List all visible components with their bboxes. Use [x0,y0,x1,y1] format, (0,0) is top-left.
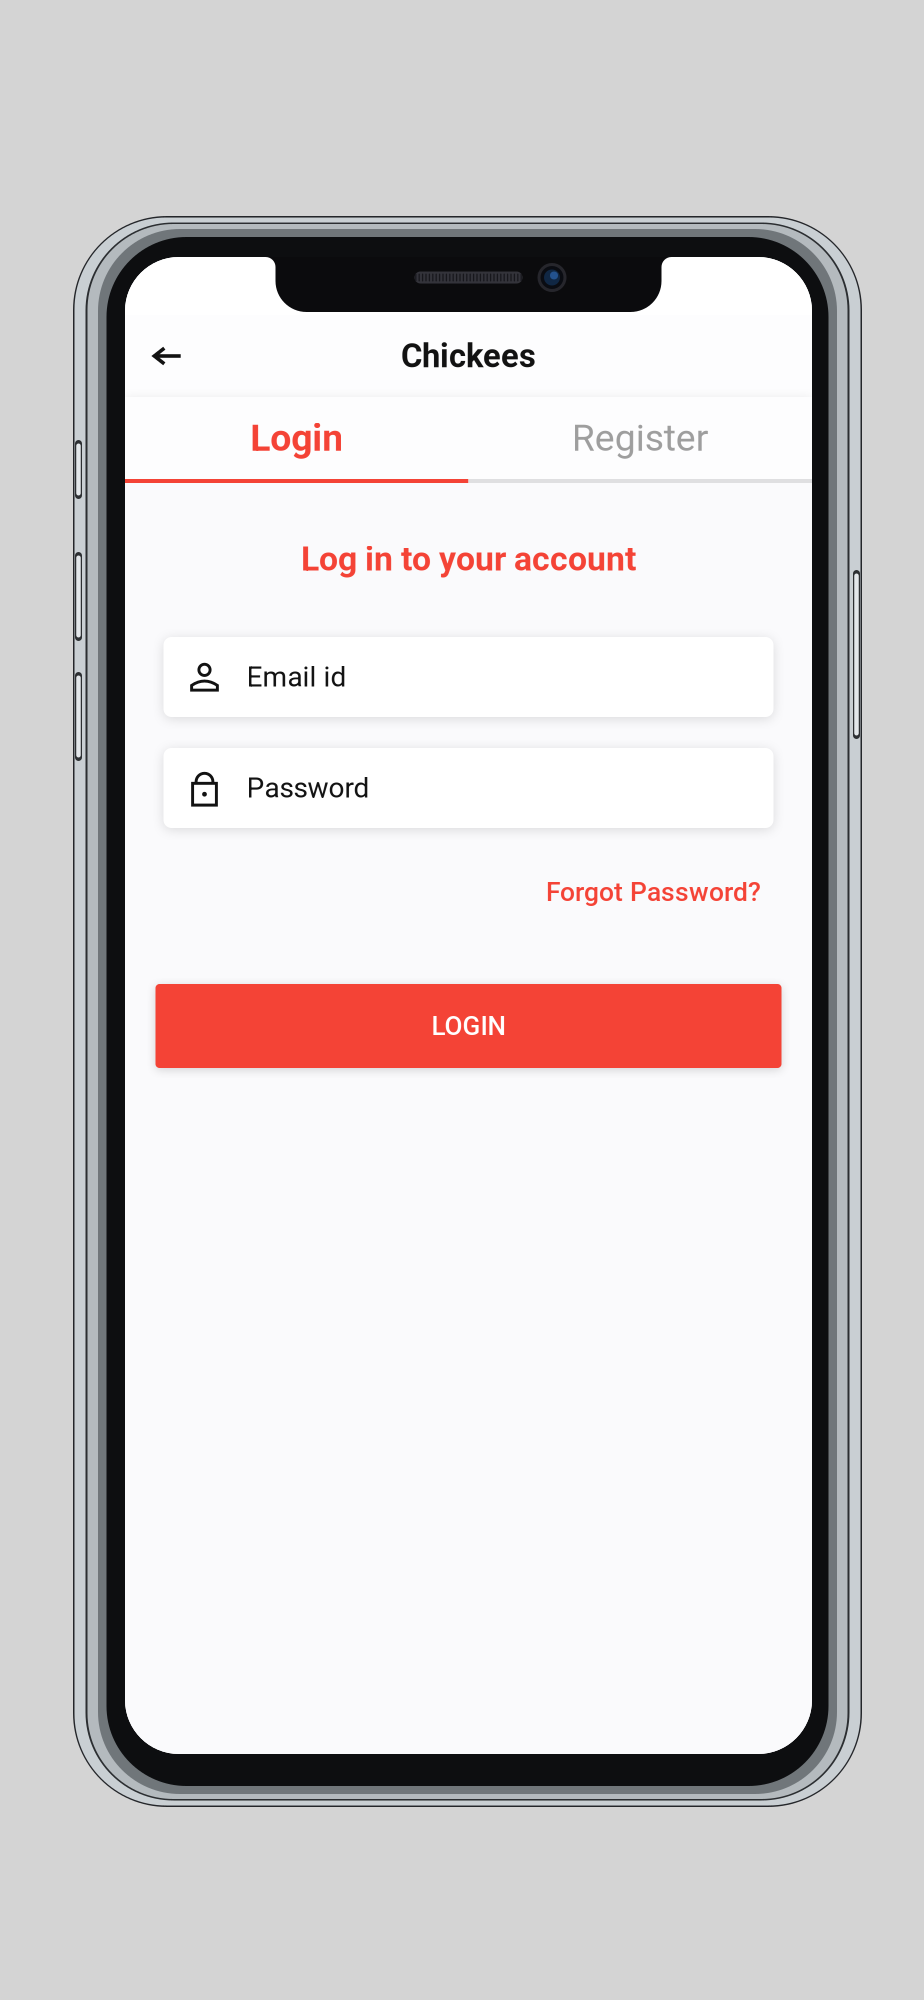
staticText: LOGIN [431,1011,505,1041]
staticText: Register [572,416,709,460]
button[interactable]: Forgot Password? [546,870,761,914]
button[interactable]: Login [125,397,468,479]
staticText: Log in to your account [301,539,636,579]
staticText: Email id [246,661,346,693]
staticText: Chickees [401,337,536,375]
staticText: Forgot Password? [546,876,761,907]
button[interactable]: Back [137,326,197,386]
button[interactable]: Register [468,397,812,479]
staticText: Password [246,772,369,804]
staticText: Login [250,416,343,460]
button[interactable]: LOGIN [155,984,781,1068]
